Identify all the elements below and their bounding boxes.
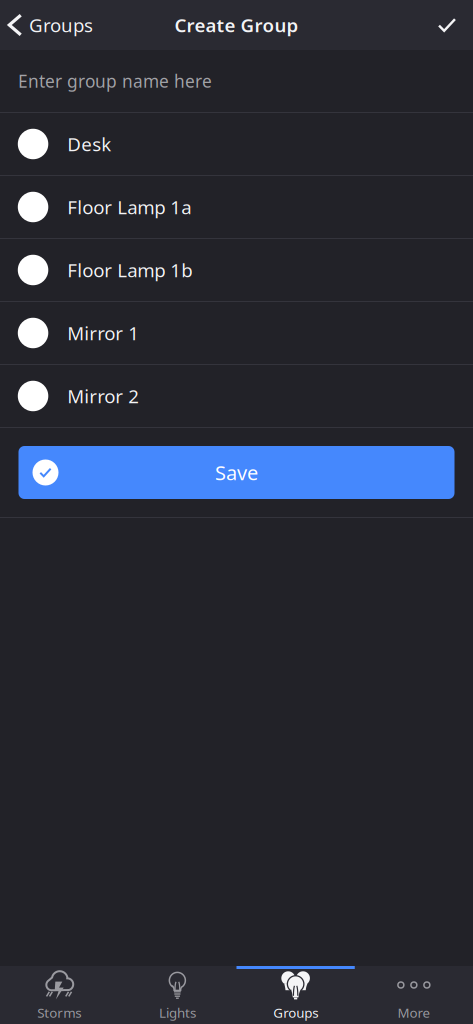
staticText: Mirror 1 <box>67 321 139 345</box>
staticText: Floor Lamp 1b <box>67 258 192 282</box>
staticText: Mirror 2 <box>67 384 139 408</box>
staticText: Floor Lamp 1a <box>67 195 191 219</box>
button[interactable]: Done <box>421 0 473 50</box>
staticText: Save <box>215 459 258 486</box>
button[interactable]: Lights <box>118 966 236 1024</box>
button[interactable]: More <box>355 966 473 1024</box>
staticText: Groups <box>29 13 93 37</box>
staticText: Storms <box>37 1004 81 1021</box>
button[interactable]: Mirror 1 <box>0 302 473 365</box>
button[interactable]: Groups <box>0 0 105 50</box>
button[interactable]: Storms <box>0 966 118 1024</box>
staticText: Desk <box>67 132 111 156</box>
button[interactable]: Desk <box>0 113 473 176</box>
button[interactable]: Mirror 2 <box>0 365 473 428</box>
staticText: Lights <box>159 1004 196 1021</box>
button[interactable]: Floor Lamp 1b <box>0 239 473 302</box>
staticText: Create Group <box>174 13 298 37</box>
button[interactable]: Groups <box>236 966 355 1024</box>
staticText: Groups <box>273 1004 318 1021</box>
staticText: More <box>397 1004 430 1021</box>
button[interactable]: Enter group name here <box>0 50 473 112</box>
button[interactable]: Save <box>0 428 473 517</box>
staticText: Enter group name here <box>18 69 212 92</box>
button[interactable]: Floor Lamp 1a <box>0 176 473 239</box>
